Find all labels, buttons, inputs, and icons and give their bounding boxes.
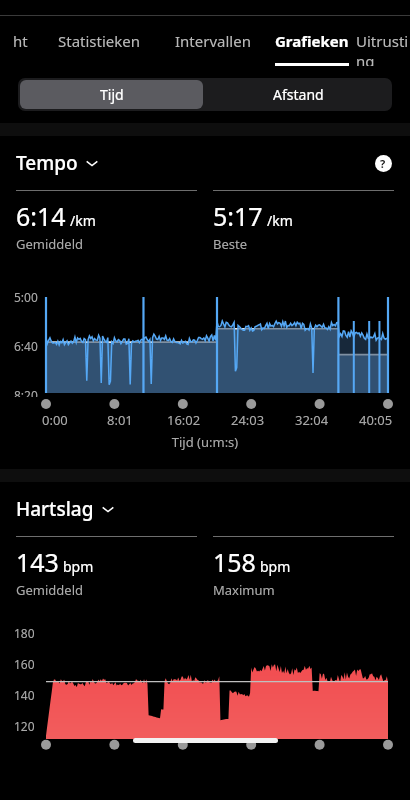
staticText: Beste xyxy=(213,235,248,253)
staticText: 6:40 xyxy=(14,338,38,354)
staticText: 5:17 xyxy=(213,199,263,233)
staticText: Tempo xyxy=(16,150,78,176)
staticText: 16:02 xyxy=(167,411,201,429)
button[interactable]: Tempo xyxy=(16,150,99,176)
staticText: 24:03 xyxy=(231,411,265,429)
staticText: 0:00 xyxy=(42,411,68,429)
staticText: 160 xyxy=(14,656,35,672)
staticText: 120 xyxy=(14,718,35,734)
staticText: 8:01 xyxy=(107,411,133,429)
button[interactable]: Help xyxy=(372,152,394,174)
staticText: 6:14 xyxy=(16,199,66,233)
staticText: Afstand xyxy=(273,85,324,104)
staticText: Intervallen xyxy=(175,31,251,51)
button[interactable]: Afstand xyxy=(205,78,392,111)
staticText: Tijd xyxy=(100,85,124,104)
staticText: 8:20 xyxy=(14,387,38,397)
button[interactable]: Uitrusting xyxy=(356,16,410,66)
button[interactable]: ht xyxy=(0,16,40,66)
staticText: /km xyxy=(70,211,96,230)
staticText: 158 xyxy=(213,545,256,579)
staticText: Uitrusting xyxy=(356,31,410,66)
staticText: 5:00 xyxy=(14,289,38,305)
staticText: Tijd (u:m:s) xyxy=(0,433,410,451)
staticText: Gemiddeld xyxy=(16,581,83,599)
button[interactable]: Tijd xyxy=(20,80,203,109)
staticText: bpm xyxy=(260,557,291,576)
staticText: bpm xyxy=(63,557,94,576)
staticText: ? xyxy=(380,156,386,171)
staticText: ht xyxy=(13,31,28,51)
staticText: 32:04 xyxy=(295,411,329,429)
button[interactable]: Hartslag xyxy=(16,496,394,522)
button[interactable]: Intervallen xyxy=(158,16,268,66)
button[interactable]: Grafieken xyxy=(268,16,356,66)
staticText: /km xyxy=(267,211,293,230)
staticText: 140 xyxy=(14,687,35,703)
staticText: Maximum xyxy=(213,581,275,599)
staticText: 180 xyxy=(14,625,35,641)
button[interactable]: Statistieken xyxy=(40,16,158,66)
staticText: Grafieken xyxy=(275,31,349,51)
staticText: Statistieken xyxy=(58,31,141,51)
staticText: 40:05 xyxy=(359,411,393,429)
staticText: Hartslag xyxy=(16,496,94,522)
staticText: Gemiddeld xyxy=(16,235,83,253)
staticText: 143 xyxy=(16,545,59,579)
